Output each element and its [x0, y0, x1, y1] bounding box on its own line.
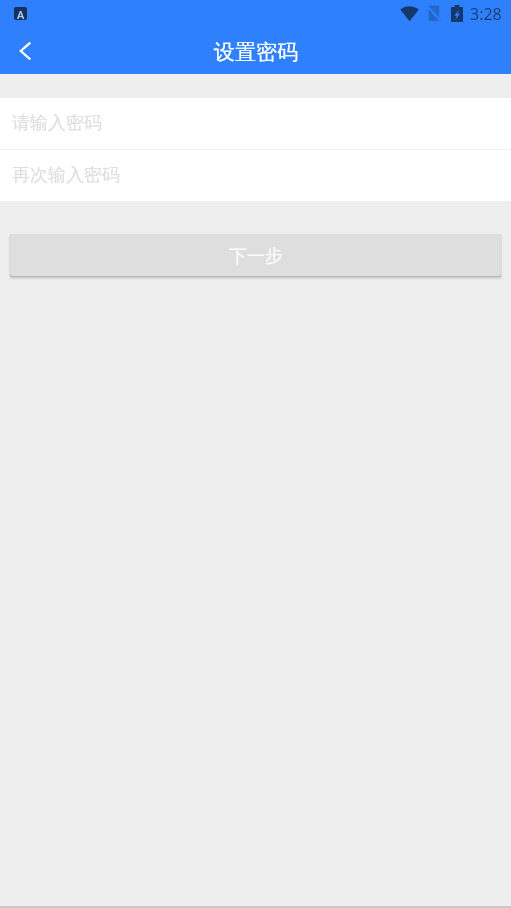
button[interactable]: 再次输入密码 [0, 150, 511, 201]
staticText: 下一步 [229, 245, 283, 268]
staticText: 再次输入密码 [12, 164, 120, 187]
staticText: 3:28 [470, 3, 502, 25]
button[interactable]: Back [0, 26, 48, 74]
other: Battery charging [451, 5, 463, 23]
other: No SIM card [426, 4, 442, 23]
button[interactable]: 请输入密码 [0, 98, 511, 149]
other: Wi-Fi [400, 5, 419, 22]
staticText: A [17, 7, 25, 20]
staticText: 请输入密码 [12, 112, 102, 135]
staticText: 设置密码 [214, 39, 298, 65]
